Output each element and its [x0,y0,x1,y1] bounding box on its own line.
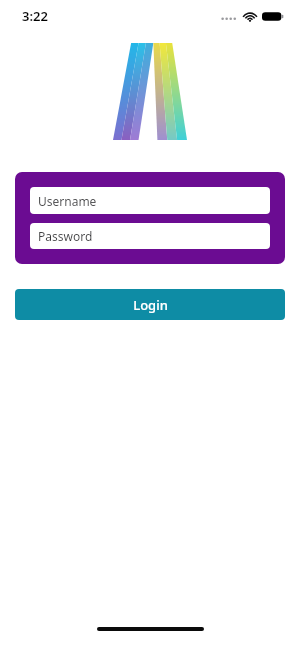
button[interactable]: Username [30,187,270,214]
staticText: Login [133,296,168,314]
button[interactable]: Login [15,289,285,320]
button[interactable]: Password [30,223,270,249]
staticText: 3:22 [22,7,48,25]
staticText: Password [38,228,93,244]
other: App logo [113,43,187,140]
staticText: Username [38,193,97,209]
